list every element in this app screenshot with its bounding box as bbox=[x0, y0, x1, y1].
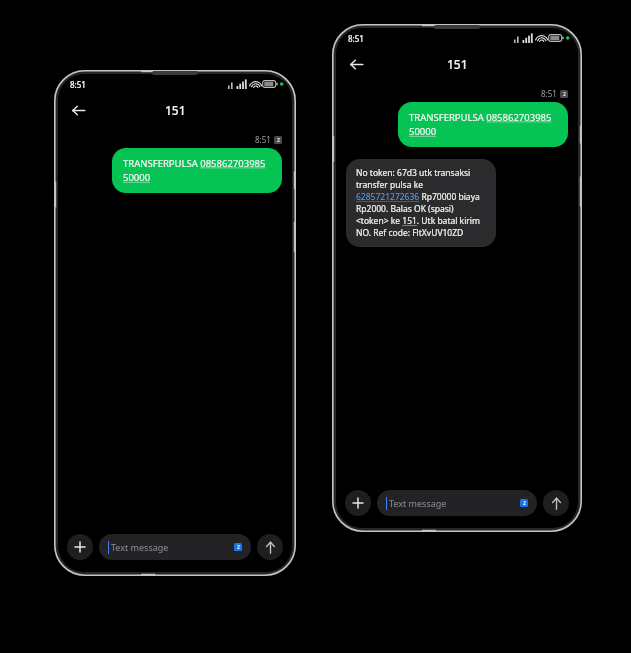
button[interactable]: Send bbox=[543, 490, 569, 516]
button[interactable]: Text message bbox=[99, 534, 251, 560]
staticText: 8:51 bbox=[255, 134, 271, 145]
button[interactable]: Back bbox=[342, 50, 370, 78]
staticText: 151 bbox=[447, 56, 468, 72]
button[interactable]: Back bbox=[64, 96, 92, 124]
button[interactable]: Send bbox=[257, 534, 283, 560]
staticText: 2 bbox=[237, 544, 240, 551]
staticText: TRANSFERPULSA 085862703985 50000 bbox=[409, 111, 557, 138]
staticText: Text message bbox=[111, 541, 169, 553]
button[interactable]: No token: 67d3 utk transaksi transfer pu… bbox=[346, 159, 496, 247]
staticText: 2 bbox=[563, 91, 566, 98]
staticText: 2 bbox=[277, 137, 280, 144]
staticText: Text message bbox=[389, 497, 447, 509]
staticText: 151 bbox=[165, 102, 186, 118]
staticText: TRANSFERPULSA 085862703985 50000 bbox=[123, 157, 271, 184]
button[interactable]: Attach bbox=[67, 534, 93, 560]
staticText: No token: 67d3 utk transaksi transfer pu… bbox=[356, 167, 486, 239]
staticText: 8:51 bbox=[70, 79, 86, 90]
staticText: 8:51 bbox=[348, 33, 364, 44]
button[interactable]: Attach bbox=[345, 490, 371, 516]
staticText: 8:51 bbox=[541, 88, 557, 99]
button[interactable]: Text message bbox=[377, 490, 537, 516]
button[interactable]: TRANSFERPULSA 085862703985 50000 bbox=[398, 102, 568, 147]
button[interactable]: TRANSFERPULSA 085862703985 50000 bbox=[112, 148, 282, 193]
staticText: 2 bbox=[523, 500, 526, 507]
